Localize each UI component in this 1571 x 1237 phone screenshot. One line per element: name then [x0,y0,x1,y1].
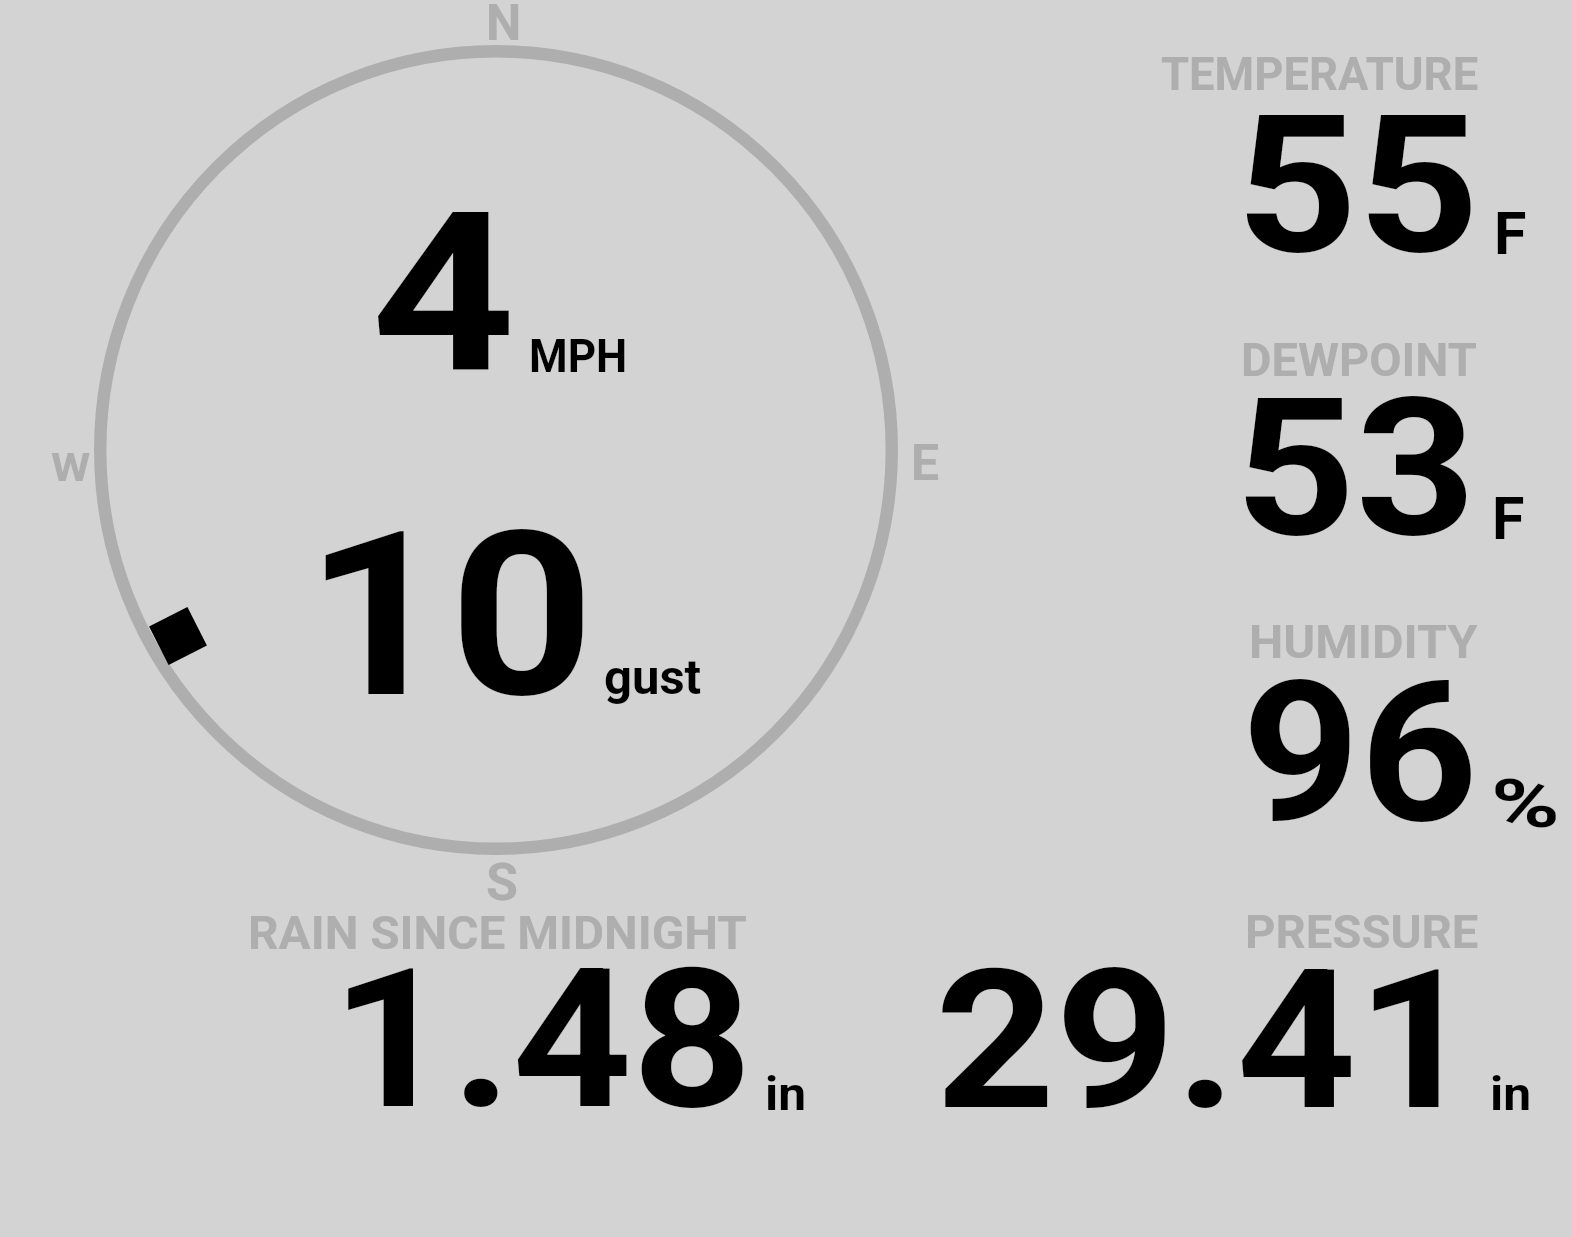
staticText: W [51,446,91,491]
button[interactable]: HUMIDITY [1140,604,1560,844]
staticText: E [911,434,940,493]
staticText: S [486,852,519,913]
staticText: HUMIDITY [1249,615,1478,669]
button[interactable]: RAIN SINCE MIDNIGHT [230,896,830,1126]
button[interactable]: Wind direction compass [50,0,950,900]
staticText: MPH [529,329,628,383]
staticText: 4 [371,164,516,423]
staticText: 1.48 [331,927,753,1153]
button[interactable]: PRESSURE [920,896,1550,1126]
staticText: gust [604,649,702,706]
staticText: TEMPERATURE [1161,47,1478,101]
staticText: 29.41 [935,928,1477,1154]
staticText: PRESSURE [1245,905,1479,959]
staticText: in [765,1066,806,1121]
staticText: F [1492,484,1525,553]
staticText: F [1494,199,1527,268]
staticText: DEWPOINT [1241,333,1478,387]
staticText: 55 [1236,74,1480,298]
staticText: % [1491,765,1560,844]
staticText: N [486,0,522,53]
staticText: in [1490,1066,1531,1121]
staticText: 96 [1242,640,1478,867]
button[interactable]: DEWPOINT [1140,322,1560,562]
staticText: 53 [1235,357,1477,581]
button[interactable]: TEMPERATURE [1140,40,1560,280]
staticText: RAIN SINCE MIDNIGHT [248,906,747,960]
staticText: 10 [305,482,594,749]
